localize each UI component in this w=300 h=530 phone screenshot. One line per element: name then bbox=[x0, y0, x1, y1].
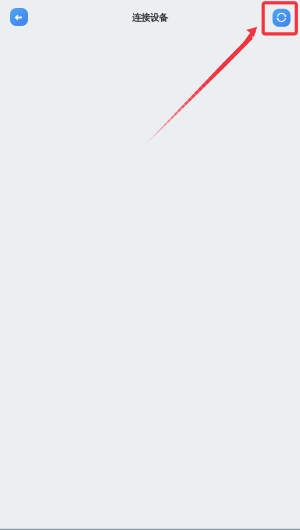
staticText: 连接设备 bbox=[132, 12, 168, 23]
button[interactable]: Refresh bbox=[272, 9, 290, 27]
button[interactable]: Back bbox=[10, 8, 28, 26]
